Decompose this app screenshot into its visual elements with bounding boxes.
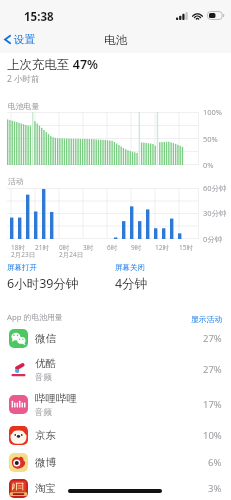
staticText: 3% (208, 482, 222, 495)
staticText: 0% (203, 160, 214, 170)
staticText: 音频 (35, 372, 52, 383)
staticText: 60分钟 (203, 183, 227, 193)
staticText: 3时 (83, 243, 94, 252)
staticText: 12时 (155, 243, 169, 252)
staticText: 4分钟 (115, 275, 148, 292)
staticText: 50% (203, 134, 218, 144)
staticText: 2月23日 (11, 250, 36, 259)
button[interactable]: 屏幕打开 (7, 263, 79, 292)
staticText: 15:38 (24, 9, 54, 25)
staticText: 17% (203, 398, 222, 411)
staticText: 电池电量 (8, 101, 40, 111)
staticText: 15时 (179, 243, 193, 252)
button[interactable]: 微信 (0, 324, 231, 352)
button[interactable]: 屏幕关闭 (115, 263, 148, 292)
button[interactable]: 京东 (0, 422, 231, 449)
staticText: 微博 (35, 456, 56, 469)
staticText: 京东 (35, 429, 56, 442)
staticText: 电池 (104, 33, 127, 47)
staticText: 屏幕关闭 (115, 263, 145, 272)
staticText: 0时 (59, 243, 70, 252)
staticText: 27% (203, 363, 222, 376)
staticText: 27% (203, 332, 222, 345)
staticText: 设置 (14, 33, 35, 46)
staticText: 6% (208, 456, 222, 469)
staticText: 0分钟 (203, 234, 223, 244)
staticText: 上次充电至 47% (7, 56, 98, 73)
staticText: 淘宝 (35, 482, 56, 495)
staticText: 哔哩哔哩 (35, 392, 77, 405)
staticText: 9时 (131, 243, 142, 252)
button[interactable]: 优酷 (0, 352, 231, 387)
staticText: 显示活动 (191, 314, 223, 324)
staticText: 100% (203, 107, 223, 117)
staticText: App 的电池用量 (7, 312, 63, 323)
staticText: 30分钟 (203, 208, 227, 218)
staticText: 优酷 (35, 357, 56, 370)
button[interactable]: 淘宝 (0, 475, 231, 500)
staticText: 屏幕打开 (7, 263, 37, 272)
staticText: 活动 (8, 176, 24, 186)
button[interactable]: 微博 (0, 449, 231, 475)
button[interactable]: 哔哩哔哩 (0, 387, 231, 422)
staticText: 21时 (35, 243, 49, 252)
staticText: 音频 (35, 407, 52, 418)
staticText: 2月24日 (59, 250, 84, 259)
button[interactable]: 显示活动 (187, 310, 227, 328)
staticText: 10% (203, 429, 222, 442)
staticText: 18时 (11, 243, 25, 252)
button[interactable]: 设置 (1, 30, 38, 49)
staticText: 6小时39分钟 (7, 275, 79, 292)
staticText: 微信 (35, 332, 56, 345)
staticText: 6时 (107, 243, 118, 252)
staticText: 2 小时前 (7, 73, 40, 85)
